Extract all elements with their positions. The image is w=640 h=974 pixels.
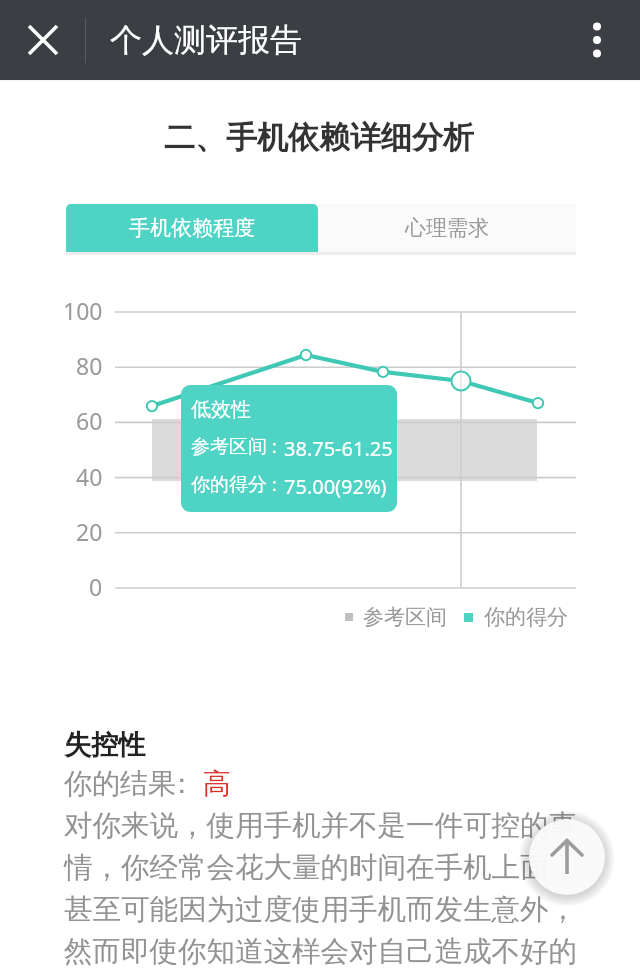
staticText: 75.00(92%): [284, 473, 387, 500]
staticText: 你的得分: [191, 473, 267, 497]
staticText: 手机依赖程度: [129, 215, 255, 241]
staticText: 60: [76, 405, 103, 436]
staticText: 0: [89, 571, 103, 602]
staticText: 你的结果: [64, 766, 176, 801]
staticText: 心理需求: [405, 215, 489, 241]
staticText: 38.75-61.25: [284, 435, 393, 462]
staticText: 100: [63, 295, 103, 326]
staticText: 高: [203, 766, 231, 801]
staticText: 20: [76, 516, 103, 547]
staticText: ：: [265, 473, 284, 497]
staticText: 低效性: [191, 397, 251, 422]
staticText: 参考区间: [363, 604, 447, 630]
staticText: 然而即使你知道这样会对自己造成不好的: [64, 934, 577, 970]
staticText: ：: [265, 435, 284, 459]
button[interactable]: Close: [13, 10, 73, 70]
button[interactable]: 手机依赖程度: [66, 204, 318, 252]
button[interactable]: More options: [569, 12, 625, 68]
staticText: 情，你经常会花大量的时间在手机上面，: [64, 850, 577, 886]
staticText: 甚至可能因为过度使用手机而发生意外，: [64, 892, 577, 928]
staticText: ：: [168, 766, 196, 801]
staticText: 个人测评报告: [110, 20, 302, 60]
staticText: 你的得分: [484, 604, 568, 630]
button[interactable]: Scroll to top: [529, 819, 605, 895]
button[interactable]: 心理需求: [318, 204, 576, 252]
staticText: 80: [76, 350, 103, 381]
staticText: 参考区间: [191, 435, 267, 459]
staticText: 二、手机依赖详细分析: [164, 118, 474, 157]
staticText: 对你来说，使用手机并不是一件可控的事: [64, 808, 577, 844]
staticText: 40: [76, 461, 103, 492]
staticText: 失控性: [64, 728, 145, 762]
